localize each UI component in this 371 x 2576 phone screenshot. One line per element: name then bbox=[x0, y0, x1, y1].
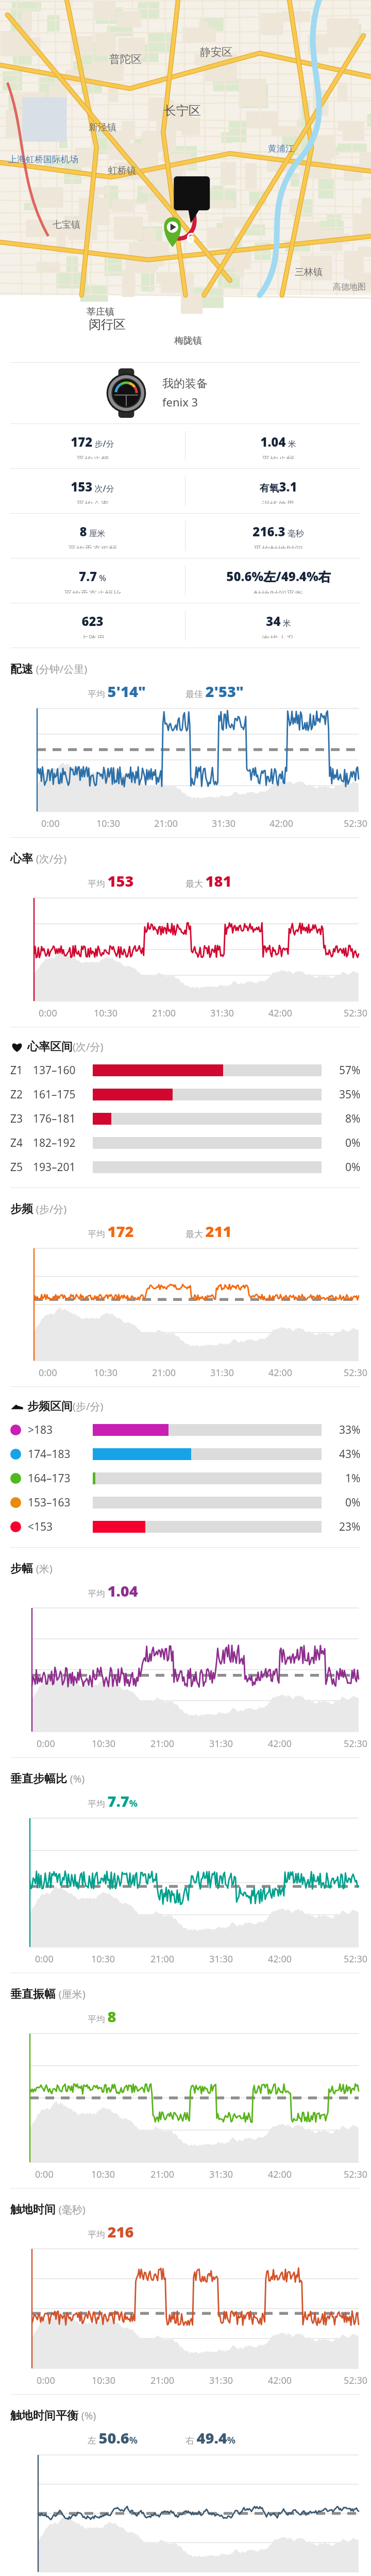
staticText: 新泾镇 bbox=[89, 122, 116, 133]
staticText: 42:00 bbox=[269, 817, 294, 830]
button[interactable]: Route map bbox=[0, 0, 371, 67]
button[interactable]: 有氧3.1 bbox=[185, 469, 371, 513]
staticText: 52:30 bbox=[344, 2168, 368, 2181]
staticText: 10:30 bbox=[94, 1007, 118, 1020]
button[interactable]: >183 bbox=[0, 1418, 371, 1442]
staticText: 触地时间平衡 (%) bbox=[10, 2407, 96, 2422]
staticText: 52:30 bbox=[344, 1953, 368, 1965]
staticText: 0% bbox=[345, 1495, 361, 1510]
button[interactable]: Z5 bbox=[0, 1155, 371, 1179]
staticText: 216.3 毫秒 bbox=[252, 523, 304, 540]
staticText: 触地时间 (毫秒) bbox=[10, 2201, 86, 2216]
staticText: 右 49.4% bbox=[185, 2428, 236, 2448]
staticText: 6 bbox=[187, 228, 195, 247]
staticText: 普陀区 bbox=[109, 53, 142, 66]
staticText: 1.04 米 bbox=[260, 433, 296, 450]
staticText: 最佳 2'53" bbox=[185, 681, 244, 701]
staticText: 0% bbox=[345, 1136, 361, 1150]
staticText: 10:30 bbox=[92, 2374, 116, 2387]
button[interactable]: 153 次/分 bbox=[0, 469, 185, 513]
staticText: 平均 7.7% bbox=[88, 1791, 138, 1811]
staticText: 8% bbox=[345, 1111, 361, 1126]
staticText: 34 米 bbox=[266, 613, 291, 630]
staticText: 配速 (分钟/公里) bbox=[10, 660, 88, 676]
staticText: >183 bbox=[28, 1422, 93, 1437]
staticText: 心率区间(次/分) bbox=[27, 1040, 104, 1054]
button[interactable]: Z1 bbox=[0, 1058, 371, 1082]
staticText: 上海虹桥国际机场 bbox=[8, 154, 78, 165]
button[interactable]: 164–173 bbox=[0, 1466, 371, 1490]
button[interactable]: 623 bbox=[0, 603, 185, 648]
staticText: 8 厘米 bbox=[79, 523, 106, 540]
button[interactable]: Z4 bbox=[0, 1131, 371, 1155]
button[interactable]: Z3 bbox=[0, 1107, 371, 1131]
staticText: 10:30 bbox=[96, 817, 121, 830]
button[interactable]: 153–163 bbox=[0, 1490, 371, 1515]
staticText: 平均触地时间 bbox=[254, 545, 303, 549]
staticText: 50.6%左/49.4%右 bbox=[226, 568, 331, 585]
button[interactable]: 172 步/分 bbox=[0, 424, 185, 468]
staticText: 卡路里 bbox=[80, 634, 105, 638]
staticText: 21:00 bbox=[150, 2168, 175, 2181]
button[interactable]: 50.6%左/49.4%右 bbox=[185, 558, 371, 603]
staticText: 触地时间平衡 bbox=[254, 589, 303, 594]
staticText: 总时间 bbox=[173, 27, 199, 38]
staticText: 训练效果 bbox=[262, 500, 295, 504]
button[interactable]: 1.04 米 bbox=[185, 424, 371, 468]
other: fenix 3 watch bbox=[102, 368, 151, 418]
staticText: 闵行区 bbox=[89, 317, 126, 332]
staticText: 23% bbox=[339, 1519, 361, 1534]
staticText: 七宝镇 bbox=[53, 219, 80, 231]
button[interactable]: <153 bbox=[0, 1515, 371, 1539]
button[interactable]: 8 厘米 bbox=[0, 514, 185, 558]
button[interactable]: 216.3 毫秒 bbox=[185, 514, 371, 558]
staticText: 57% bbox=[339, 1063, 361, 1078]
staticText: 静安区 bbox=[200, 45, 232, 59]
staticText: 黄浦江 bbox=[268, 143, 294, 154]
staticText: 10:30 bbox=[91, 1953, 115, 1965]
staticText: Z4 bbox=[10, 1136, 33, 1150]
button[interactable]: fenix 3 watch bbox=[0, 363, 371, 423]
staticText: 最大 211 bbox=[185, 1221, 232, 1241]
staticText: 10:30 bbox=[91, 2168, 115, 2181]
button[interactable]: Z2 bbox=[0, 1082, 371, 1107]
staticText: 52:21 bbox=[164, 4, 207, 26]
staticText: 52:30 bbox=[344, 1007, 368, 1020]
staticText: 三林镇 bbox=[295, 266, 323, 278]
staticText: 长宁区 bbox=[164, 103, 201, 118]
staticText: 长宁区 bbox=[164, 103, 201, 118]
staticText: 垂直步幅比 (%) bbox=[10, 1770, 85, 1786]
staticText: 52:30 bbox=[344, 2374, 368, 2387]
staticText: 21:00 bbox=[152, 1007, 176, 1020]
staticText: 1% bbox=[345, 1471, 361, 1486]
staticText: 137–160 bbox=[33, 1063, 93, 1078]
staticText: 31:30 bbox=[210, 1007, 234, 1020]
staticText: <153 bbox=[28, 1519, 93, 1534]
staticText: 21:00 bbox=[154, 817, 178, 830]
staticText: 21:00 bbox=[150, 1737, 175, 1750]
staticText: 52:30 bbox=[344, 1366, 368, 1379]
staticText: fenix 3 bbox=[162, 394, 198, 410]
staticText: 31:30 bbox=[209, 2168, 233, 2181]
button[interactable]: Route map bbox=[0, 0, 371, 295]
staticText: 161–175 bbox=[33, 1087, 93, 1102]
staticText: 21:00 bbox=[150, 2374, 175, 2387]
staticText: 最大 181 bbox=[185, 871, 232, 891]
staticText: 平均 216 bbox=[88, 2222, 134, 2242]
staticText: Z2 bbox=[10, 1087, 33, 1102]
staticText: 三林镇 bbox=[295, 266, 323, 278]
staticText: 配速 bbox=[300, 27, 318, 38]
staticText: 153–163 bbox=[28, 1495, 93, 1510]
button[interactable]: 174–183 bbox=[0, 1442, 371, 1466]
staticText: 52:30 bbox=[344, 1737, 368, 1750]
button[interactable]: 34 米 bbox=[185, 603, 371, 648]
staticText: 42:00 bbox=[268, 1737, 292, 1750]
staticText: 0:00 bbox=[37, 2374, 55, 2387]
staticText: 黄浦江 bbox=[268, 143, 294, 154]
staticText: 0:00 bbox=[39, 1366, 57, 1379]
staticText: 步幅 (米) bbox=[10, 1560, 53, 1575]
staticText: Z5 bbox=[10, 1160, 33, 1175]
button[interactable]: 7.7 % bbox=[0, 558, 185, 603]
staticText: 42:00 bbox=[268, 2374, 292, 2387]
staticText: 平均 1.04 bbox=[88, 1581, 138, 1601]
